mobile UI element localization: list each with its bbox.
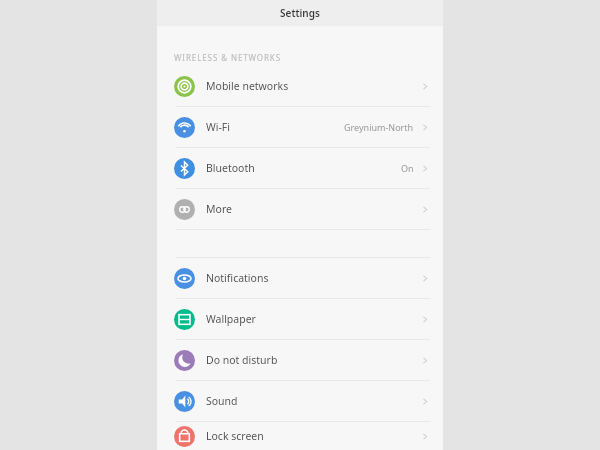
staticText: Notifications bbox=[206, 271, 269, 285]
button[interactable]: Do not disturb bbox=[157, 340, 443, 380]
staticText: Greynium-North bbox=[344, 121, 414, 133]
staticText: Bluetooth bbox=[206, 161, 255, 175]
staticText: Wi-Fi bbox=[206, 120, 231, 134]
staticText: Wallpaper bbox=[206, 312, 256, 326]
button[interactable]: More bbox=[157, 189, 443, 229]
button[interactable]: Sound bbox=[157, 381, 443, 421]
staticText: Mobile networks bbox=[206, 79, 289, 93]
button[interactable]: Mobile networks bbox=[157, 66, 443, 106]
staticText: Sound bbox=[206, 394, 238, 408]
button[interactable]: Wallpaper bbox=[157, 299, 443, 339]
button[interactable]: Wi-Fi bbox=[157, 107, 443, 147]
staticText: Do not disturb bbox=[206, 353, 278, 367]
button[interactable]: Bluetooth bbox=[157, 148, 443, 188]
button[interactable]: Notifications bbox=[157, 258, 443, 298]
staticText: WIRELESS & NETWORKS bbox=[174, 52, 282, 63]
staticText: Settings bbox=[280, 6, 320, 20]
staticText: Lock screen bbox=[206, 429, 264, 443]
staticText: More bbox=[206, 202, 232, 216]
staticText: On bbox=[401, 162, 414, 174]
button[interactable]: Lock screen bbox=[157, 422, 443, 450]
